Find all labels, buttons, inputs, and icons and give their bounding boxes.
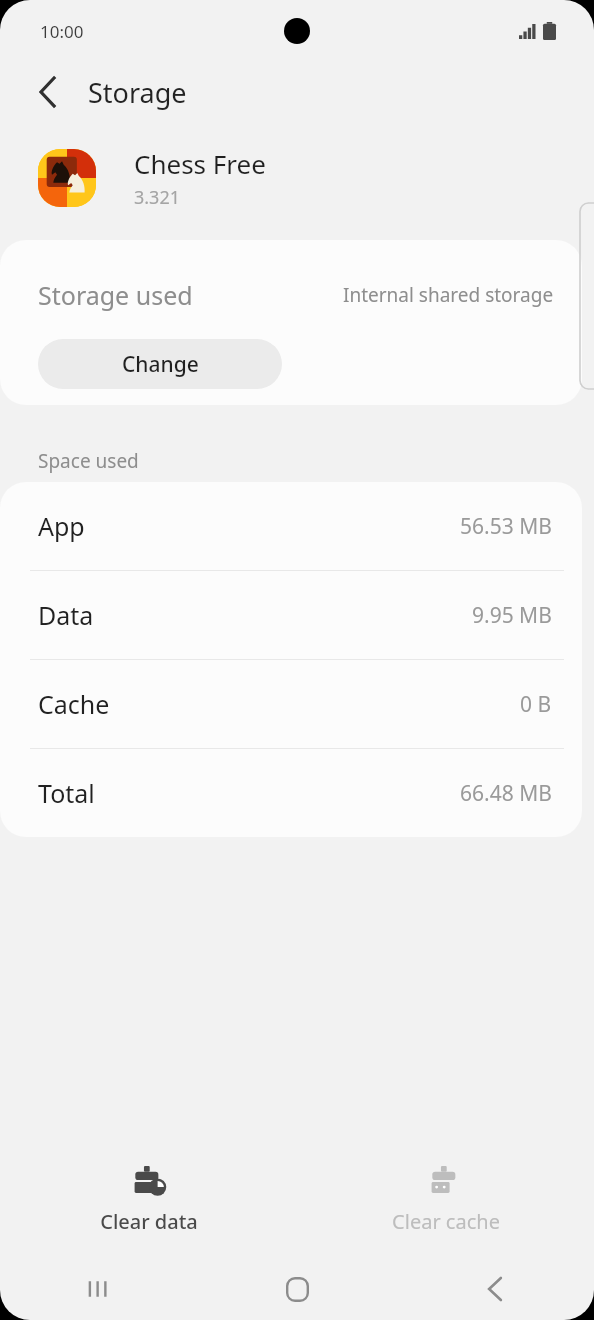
button[interactable]: Clear cache [297,1166,594,1235]
staticText: 66.48 MB [460,779,552,808]
staticText: 0 B [520,690,552,719]
button[interactable]: Back [396,1258,594,1320]
staticText: Data [38,598,94,632]
staticText: Clear cache [392,1208,500,1235]
button[interactable]: App [0,482,582,570]
staticText: Total [38,776,95,810]
button[interactable]: Change [38,339,282,389]
staticText: Storage [88,74,187,111]
staticText: Storage used [38,278,193,312]
staticText: Change [122,350,199,379]
button[interactable]: Total [0,749,582,837]
staticText: 10:00 [40,20,84,43]
staticText: 3.321 [134,185,181,210]
staticText: Clear data [100,1208,198,1235]
button[interactable]: Back [22,66,74,118]
button[interactable]: Home [198,1258,396,1320]
staticText: Internal shared storage [343,282,554,308]
staticText: Chess Free [134,146,266,181]
staticText: 9.95 MB [472,601,552,630]
staticText: Cache [38,687,110,721]
staticText: 56.53 MB [460,512,552,541]
button[interactable]: Data [0,571,582,659]
button[interactable]: Recents [0,1258,198,1320]
button[interactable]: Clear data [0,1166,297,1235]
staticText: Space used [38,448,139,474]
staticText: App [38,509,85,543]
button[interactable]: Cache [0,660,582,748]
